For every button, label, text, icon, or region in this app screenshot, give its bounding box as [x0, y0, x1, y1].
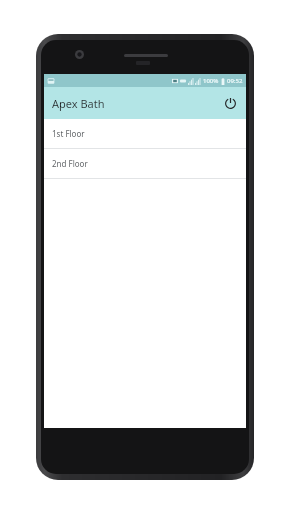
button[interactable]: 1st Floor — [44, 119, 246, 148]
button[interactable]: Power — [219, 92, 241, 114]
staticText: Apex Bath — [52, 96, 105, 111]
staticText: 100% — [203, 77, 219, 85]
staticText: 09:52 — [227, 77, 243, 85]
staticText: 2nd Floor — [52, 158, 88, 169]
staticText: 1st Floor — [52, 128, 85, 139]
button[interactable]: 2nd Floor — [44, 149, 246, 178]
